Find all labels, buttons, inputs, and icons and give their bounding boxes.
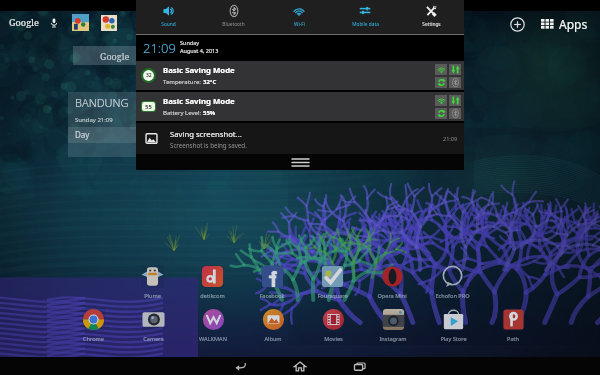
staticText: Opera Mini: [377, 292, 407, 300]
button[interactable]: Wi-Fi: [266, 0, 332, 28]
staticText: Camera: [143, 335, 164, 343]
button[interactable]: Toggle on: [435, 95, 447, 106]
staticText: 21:09: [443, 135, 458, 142]
staticText: Plume: [144, 292, 161, 300]
staticText: Sound: [161, 21, 176, 28]
staticText: 21:09: [143, 39, 176, 57]
staticText: Basic Saving Mode: [163, 96, 235, 107]
staticText: Path: [507, 335, 519, 343]
button[interactable]: Toggle on: [435, 108, 447, 119]
staticText: Album: [264, 335, 282, 343]
button[interactable]: detikcom: [182, 265, 242, 300]
button[interactable]: Chrome: [63, 308, 123, 343]
staticText: August 4, 2013: [180, 47, 219, 54]
staticText: BANDUNG: [75, 95, 129, 110]
button[interactable]: Google search: [9, 14, 129, 31]
button[interactable]: Foursquare: [302, 265, 362, 300]
staticText: Bluetooth: [222, 21, 245, 28]
button[interactable]: Search widget: [73, 46, 157, 65]
button[interactable]: Saving screenshot...: [136, 123, 464, 154]
staticText: Screenshot is being saved.: [170, 141, 247, 149]
staticText: Facebook: [259, 292, 285, 300]
button[interactable]: Toggle off: [449, 77, 461, 88]
button[interactable]: Movies: [303, 308, 363, 343]
button[interactable]: Path: [483, 308, 543, 343]
staticText: Day: [75, 129, 90, 140]
button[interactable]: Album: [243, 308, 303, 343]
button[interactable]: WALKMAN: [183, 308, 243, 343]
button[interactable]: Sound: [136, 0, 201, 28]
staticText: Basic Saving Mode: [163, 65, 235, 76]
button[interactable]: Facebook: [242, 265, 302, 300]
button[interactable]: 32: [136, 61, 464, 90]
button[interactable]: Toggle off: [449, 108, 461, 119]
button[interactable]: Toggle on: [449, 95, 461, 106]
button[interactable]: Instagram: [363, 308, 423, 343]
staticText: Wi-Fi: [294, 21, 305, 28]
staticText: Google: [100, 50, 130, 62]
staticText: Google: [9, 16, 39, 29]
staticText: 32: [146, 72, 152, 79]
button[interactable]: Home: [278, 357, 322, 375]
staticText: Settings: [422, 21, 441, 28]
staticText: Battery Level:: [163, 109, 203, 117]
staticText: 32°C: [203, 78, 217, 86]
button[interactable]: Back: [218, 357, 262, 375]
staticText: Mobile data: [352, 21, 379, 28]
button[interactable]: BANDUNG: [68, 92, 158, 157]
staticText: Play Store: [440, 335, 467, 343]
button[interactable]: Add widget: [507, 14, 527, 34]
button[interactable]: 55: [136, 92, 464, 121]
staticText: Temperature:: [163, 78, 203, 86]
staticText: Instagram: [379, 335, 407, 343]
staticText: WALKMAN: [199, 335, 227, 343]
button[interactable]: Camera: [123, 308, 183, 343]
button[interactable]: Echofon PRO: [422, 265, 482, 300]
staticText: Movies: [324, 335, 343, 343]
button[interactable]: Toggle on: [449, 64, 461, 75]
button[interactable]: Apps: [541, 16, 588, 32]
staticText: Sunday 21:09: [75, 116, 113, 124]
staticText: Foursquare: [317, 292, 348, 300]
button[interactable]: Toggle on: [435, 64, 447, 75]
button[interactable]: Toggle on: [435, 77, 447, 88]
staticText: Sunday: [180, 39, 200, 46]
button[interactable]: Play Store: [423, 308, 483, 343]
button[interactable]: Settings: [398, 0, 464, 28]
button[interactable]: Opera Mini: [362, 265, 422, 300]
staticText: detikcom: [200, 292, 225, 300]
staticText: Chrome: [83, 335, 104, 343]
staticText: 55%: [203, 109, 216, 117]
staticText: Apps: [559, 16, 588, 32]
button[interactable]: Bluetooth: [201, 0, 266, 28]
button[interactable]: Plume: [122, 265, 182, 300]
button[interactable]: Recent apps: [338, 357, 382, 375]
staticText: Echofon PRO: [435, 292, 470, 300]
staticText: Saving screenshot...: [170, 129, 242, 139]
button[interactable]: Collapse shade: [136, 154, 464, 170]
button[interactable]: Mobile data: [332, 0, 398, 28]
staticText: 55: [145, 103, 152, 111]
